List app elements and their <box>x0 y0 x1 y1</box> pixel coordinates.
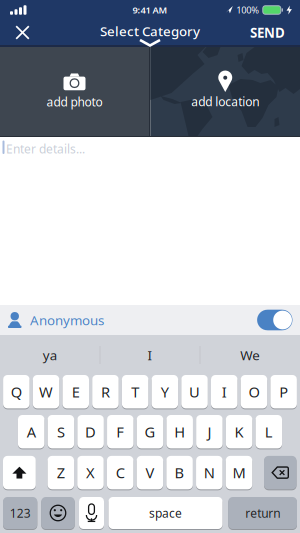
staticText: Y <box>161 382 169 401</box>
button[interactable]: Y <box>152 375 178 409</box>
staticText: 100% <box>236 4 259 16</box>
staticText: O <box>248 382 259 401</box>
button[interactable]: Close <box>0 25 29 39</box>
button[interactable]: B <box>166 456 193 490</box>
staticText: M <box>232 463 245 482</box>
staticText: Anonymous <box>30 311 104 329</box>
button[interactable]: T <box>122 375 148 409</box>
button[interactable]: I <box>100 335 199 375</box>
staticText: W <box>39 382 53 401</box>
button[interactable]: U <box>181 375 208 409</box>
button[interactable]: R <box>92 375 119 409</box>
staticText: D <box>85 422 96 441</box>
button[interactable]: E <box>62 375 89 409</box>
button[interactable]: Dictate <box>79 497 104 530</box>
button[interactable]: Shift <box>3 456 36 490</box>
staticText: F <box>116 422 124 441</box>
staticText: 9:41 AM <box>132 4 167 16</box>
staticText: B <box>175 463 185 482</box>
staticText: add location <box>191 93 259 109</box>
staticText: X <box>86 463 95 482</box>
staticText: A <box>27 422 36 441</box>
staticText: I <box>222 382 227 401</box>
staticText: Z <box>57 463 65 482</box>
button[interactable]: H <box>166 415 193 449</box>
staticText: Enter details... <box>6 141 85 157</box>
staticText: Select Category <box>100 22 200 40</box>
staticText: T <box>131 382 139 401</box>
staticText: K <box>235 422 244 441</box>
button[interactable]: F <box>107 415 133 449</box>
button[interactable]: Delete <box>264 456 296 490</box>
button[interactable]: V <box>137 456 163 490</box>
button[interactable]: space <box>108 497 222 530</box>
button[interactable]: G <box>137 415 163 449</box>
button[interactable]: M <box>226 456 252 490</box>
staticText: space <box>149 505 182 521</box>
staticText: I <box>147 346 152 364</box>
button[interactable]: Select Category <box>100 22 200 40</box>
staticText: P <box>279 382 288 401</box>
staticText: S <box>57 422 65 441</box>
button[interactable]: X <box>77 456 104 490</box>
button[interactable]: Q <box>3 375 30 409</box>
staticText: We <box>240 346 260 364</box>
button[interactable]: SEND <box>250 24 300 41</box>
staticText: J <box>207 422 211 441</box>
button[interactable]: add photo <box>0 47 149 136</box>
button[interactable]: add location <box>150 45 300 134</box>
button[interactable]: D <box>77 415 104 449</box>
staticText: E <box>72 382 80 401</box>
button[interactable]: I <box>211 375 237 409</box>
staticText: C <box>116 463 125 482</box>
staticText: N <box>204 463 215 482</box>
button[interactable]: Anonymous <box>257 310 292 330</box>
button[interactable]: S <box>48 415 74 449</box>
button[interactable]: Z <box>47 456 74 490</box>
button[interactable]: K <box>226 415 252 449</box>
staticText: V <box>145 463 154 482</box>
button[interactable]: We <box>200 335 300 375</box>
button[interactable]: A <box>18 415 44 449</box>
staticText: R <box>101 382 110 401</box>
button[interactable]: P <box>270 375 297 409</box>
staticText: G <box>144 422 155 441</box>
button[interactable]: L <box>255 415 282 449</box>
button[interactable]: return <box>228 497 297 530</box>
staticText: 123 <box>10 505 31 521</box>
staticText: U <box>189 382 200 401</box>
button[interactable]: W <box>33 375 59 409</box>
staticText: H <box>174 422 185 441</box>
button[interactable]: C <box>107 456 133 490</box>
button[interactable]: O <box>241 375 267 409</box>
staticText: Q <box>11 382 22 401</box>
staticText: return <box>245 505 280 521</box>
button[interactable]: J <box>196 415 223 449</box>
button[interactable]: N <box>196 456 223 490</box>
button[interactable]: Emoji <box>41 497 75 530</box>
staticText: add photo <box>46 94 102 110</box>
staticText: L <box>265 422 273 441</box>
staticText: SEND <box>250 24 285 41</box>
button[interactable]: ya <box>0 335 99 375</box>
button[interactable]: 123 <box>3 497 37 530</box>
staticText: ya <box>43 346 57 364</box>
